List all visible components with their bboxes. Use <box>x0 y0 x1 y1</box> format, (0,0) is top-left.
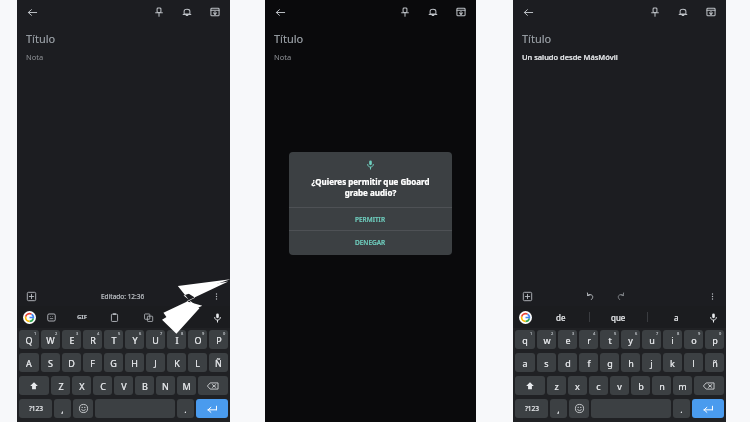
button[interactable]: que <box>590 306 647 328</box>
button[interactable]: . <box>673 399 690 418</box>
button[interactable]: d <box>558 353 577 372</box>
button[interactable]: M <box>177 376 196 395</box>
button[interactable]: Z <box>51 376 70 395</box>
button[interactable]: Shift <box>19 376 49 395</box>
button[interactable]: L <box>188 353 207 372</box>
button[interactable]: N <box>156 376 175 395</box>
button[interactable]: . <box>177 399 194 418</box>
button[interactable]: Archive <box>702 3 720 21</box>
button[interactable]: r <box>579 330 598 349</box>
button[interactable]: Ñ <box>209 353 228 372</box>
button[interactable]: Enter <box>692 399 724 418</box>
button[interactable]: More options <box>208 288 224 304</box>
button[interactable]: U <box>146 330 165 349</box>
button[interactable]: Enter <box>196 399 228 418</box>
button[interactable]: Voice input <box>209 309 225 325</box>
button[interactable]: Settings <box>175 310 189 324</box>
button[interactable]: n <box>652 376 671 395</box>
button[interactable]: Back <box>23 3 41 21</box>
button[interactable]: ?123 <box>19 399 52 418</box>
button[interactable]: Back <box>519 3 537 21</box>
button[interactable]: More options <box>704 288 720 304</box>
button[interactable]: l <box>684 353 703 372</box>
button[interactable]: ?123 <box>515 399 548 418</box>
button[interactable]: Back <box>271 3 289 21</box>
button[interactable]: a <box>515 353 535 372</box>
button[interactable]: F <box>83 353 102 372</box>
button[interactable]: Undo <box>582 288 598 304</box>
button[interactable]: m <box>673 376 692 395</box>
button[interactable]: Reminder <box>674 3 692 21</box>
button[interactable]: Google <box>518 310 532 324</box>
button[interactable]: W <box>41 330 60 349</box>
button[interactable]: O <box>188 330 207 349</box>
button[interactable]: Backspace <box>198 376 228 395</box>
button[interactable]: A <box>19 353 39 372</box>
button[interactable]: D <box>62 353 81 372</box>
button[interactable]: H <box>125 353 144 372</box>
button[interactable]: de <box>532 306 589 328</box>
button[interactable]: Translate <box>141 310 155 324</box>
button[interactable]: V <box>114 376 133 395</box>
button[interactable]: o <box>684 330 703 349</box>
button[interactable]: Archive <box>206 3 224 21</box>
button[interactable]: y <box>621 330 640 349</box>
button[interactable]: v <box>610 376 629 395</box>
button[interactable]: g <box>600 353 619 372</box>
button[interactable]: Pin <box>396 3 414 21</box>
button[interactable]: Archive <box>452 3 470 21</box>
button[interactable]: h <box>621 353 640 372</box>
button[interactable]: p <box>705 330 724 349</box>
button[interactable]: x <box>568 376 587 395</box>
button[interactable]: b <box>631 376 650 395</box>
button[interactable]: I <box>167 330 186 349</box>
button[interactable]: u <box>642 330 661 349</box>
button[interactable]: Emoji <box>73 399 93 418</box>
button[interactable]: e <box>558 330 577 349</box>
button[interactable]: R <box>83 330 102 349</box>
button[interactable]: j <box>642 353 661 372</box>
button[interactable]: Stickers <box>44 310 58 324</box>
button[interactable]: S <box>41 353 60 372</box>
button[interactable]: Voice input <box>705 309 721 325</box>
button[interactable]: P <box>209 330 228 349</box>
button[interactable]: X <box>72 376 91 395</box>
button[interactable]: k <box>663 353 682 372</box>
button[interactable]: PERMITIR <box>289 208 452 230</box>
button[interactable]: Pin <box>646 3 664 21</box>
button[interactable]: Q <box>19 330 39 349</box>
button[interactable]: Pin <box>150 3 168 21</box>
button[interactable]: Backspace <box>694 376 724 395</box>
button[interactable]: f <box>579 353 598 372</box>
button[interactable]: ñ <box>705 353 724 372</box>
button[interactable]: K <box>167 353 186 372</box>
button[interactable]: s <box>537 353 556 372</box>
button[interactable]: w <box>537 330 556 349</box>
button[interactable]: Y <box>125 330 144 349</box>
button[interactable]: q <box>515 330 535 349</box>
button[interactable]: B <box>135 376 154 395</box>
button[interactable]: Reminder <box>178 3 196 21</box>
button[interactable]: a <box>648 306 705 328</box>
button[interactable]: , <box>550 399 567 418</box>
button[interactable]: Shift <box>515 376 545 395</box>
button[interactable]: C <box>93 376 112 395</box>
button[interactable]: , <box>54 399 71 418</box>
button[interactable]: E <box>62 330 81 349</box>
button[interactable]: G <box>104 353 123 372</box>
button[interactable]: T <box>104 330 123 349</box>
button[interactable]: DENEGAR <box>289 231 452 253</box>
button[interactable]: Redo <box>612 288 628 304</box>
button[interactable]: J <box>146 353 165 372</box>
button[interactable]: c <box>589 376 608 395</box>
button[interactable]: i <box>663 330 682 349</box>
button[interactable]: Reminder <box>424 3 442 21</box>
button[interactable]: Add <box>519 288 535 304</box>
button[interactable]: Add <box>23 288 39 304</box>
button[interactable]: t <box>600 330 619 349</box>
button[interactable]: Clipboard <box>107 310 121 324</box>
button[interactable]: Emoji <box>569 399 589 418</box>
button[interactable]: z <box>547 376 566 395</box>
